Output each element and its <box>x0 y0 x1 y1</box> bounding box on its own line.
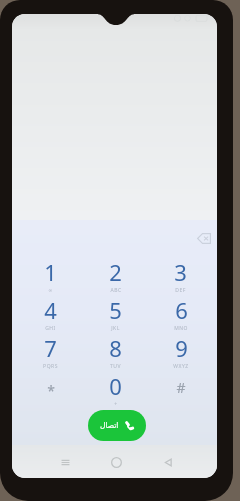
staticText: 9 <box>175 333 188 363</box>
button[interactable]: 6 <box>148 291 213 329</box>
button[interactable]: * <box>18 367 83 405</box>
button[interactable]: اتصال <box>88 410 146 441</box>
staticText: 2 <box>109 257 122 287</box>
staticText: 6 <box>175 295 188 325</box>
staticText: WXYZ <box>173 363 189 370</box>
staticText: TUV <box>110 363 121 370</box>
staticText: # <box>176 378 186 397</box>
staticText: 4 <box>44 295 57 325</box>
staticText: 5 <box>109 295 122 325</box>
button[interactable]: 4 <box>18 291 83 329</box>
staticText: DEF <box>175 287 186 294</box>
staticText: PQRS <box>43 363 58 370</box>
staticText: + <box>114 401 118 408</box>
staticText: * <box>47 381 55 400</box>
staticText: 1 <box>44 257 57 287</box>
button[interactable]: 1 <box>18 253 83 291</box>
staticText: 3 <box>174 257 187 287</box>
staticText: ∞ <box>48 287 53 293</box>
staticText: JKL <box>111 325 120 332</box>
button[interactable]: 2 <box>83 253 148 291</box>
button[interactable]: Home <box>105 451 127 473</box>
staticText: اتصال <box>100 421 119 430</box>
staticText: 7 <box>44 333 57 363</box>
staticText: GHI <box>45 325 56 332</box>
button[interactable]: 5 <box>83 291 148 329</box>
staticText: 0 <box>109 371 122 401</box>
button[interactable]: 8 <box>83 329 148 367</box>
button[interactable]: Recent apps <box>54 451 76 473</box>
button[interactable]: 9 <box>148 329 213 367</box>
button[interactable]: Backspace <box>192 226 216 250</box>
button[interactable]: 0 <box>83 367 148 405</box>
staticText: 8 <box>109 333 122 363</box>
staticText: MNO <box>174 325 188 332</box>
button[interactable]: 7 <box>18 329 83 367</box>
staticText: ABC <box>110 287 122 294</box>
button[interactable]: # <box>148 367 213 405</box>
button[interactable]: 3 <box>148 253 213 291</box>
button[interactable]: Back <box>157 451 179 473</box>
